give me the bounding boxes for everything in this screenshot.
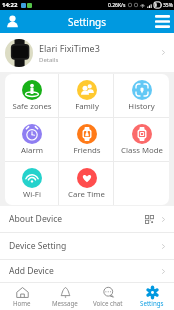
button[interactable]: Settings [130, 283, 174, 310]
button[interactable]: Menu [150, 10, 174, 33]
button[interactable]: Class Mode [114, 118, 169, 161]
staticText: Elari FixiTime3 [39, 42, 100, 54]
button[interactable]: Message [43, 283, 86, 310]
staticText: Care Time [68, 189, 105, 200]
button[interactable]: Alarm [5, 118, 59, 161]
staticText: Device Setting [9, 240, 67, 252]
button[interactable]: Safe zones [5, 74, 59, 117]
button[interactable]: Care Time [59, 162, 114, 205]
button[interactable]: About Device [0, 206, 174, 232]
button[interactable]: Device Setting [0, 233, 174, 259]
staticText: 0.26K/s [108, 2, 126, 9]
button[interactable]: Wi-Fi [5, 162, 59, 205]
button[interactable]: Friends [59, 118, 114, 161]
staticText: Add Device [9, 265, 54, 277]
staticText: Details [39, 56, 59, 64]
staticText: History [128, 101, 155, 112]
button[interactable]: Home [0, 283, 43, 310]
button[interactable]: Voice chat [86, 283, 130, 310]
staticText: Family [75, 101, 99, 112]
button[interactable]: Account [0, 10, 24, 33]
staticText: About Device [9, 213, 63, 225]
staticText: Safe zones [12, 101, 52, 112]
staticText: Alarm [21, 145, 43, 156]
button[interactable]: Elari FixiTime3 [0, 33, 174, 72]
staticText: Class Mode [121, 145, 163, 156]
staticText: Settings [140, 299, 164, 307]
button[interactable]: History [114, 74, 169, 117]
staticText: 14:22 [2, 1, 18, 9]
staticText: Settings [68, 15, 107, 29]
staticText: Wi-Fi [23, 189, 41, 200]
button[interactable]: Add Device [0, 260, 174, 282]
staticText: Home [13, 299, 31, 307]
staticText: Message [52, 299, 78, 307]
staticText: 35% [163, 2, 173, 9]
staticText: Friends [73, 145, 101, 156]
button[interactable]: Family [59, 74, 114, 117]
staticText: Voice chat [93, 299, 123, 307]
